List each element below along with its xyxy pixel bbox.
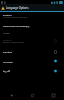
staticText: English [3, 38, 12, 41]
button[interactable]: Recents [43, 90, 64, 100]
staticText: English [3, 13, 12, 16]
button[interactable]: English [0, 12, 64, 23]
button[interactable]: Español [0, 47, 64, 56]
button[interactable]: العربية [0, 66, 64, 76]
staticText: Download language(s) [3, 24, 30, 27]
staticText: العربية [3, 70, 10, 73]
staticText: ACTIVE [3, 32, 10, 35]
button[interactable]: Up [0, 4, 6, 11]
button[interactable]: Download language(s) [0, 23, 64, 32]
button[interactable]: English [0, 35, 64, 47]
button[interactable]: Русский [0, 56, 64, 66]
staticText: Language Options [6, 6, 29, 10]
button[interactable]: Home [22, 90, 43, 100]
button[interactable]: Back [0, 90, 22, 100]
staticText: Русский [3, 60, 13, 63]
staticText: Change current language [3, 16, 27, 19]
staticText: English (United States) [3, 41, 25, 44]
staticText: Español [3, 50, 13, 53]
